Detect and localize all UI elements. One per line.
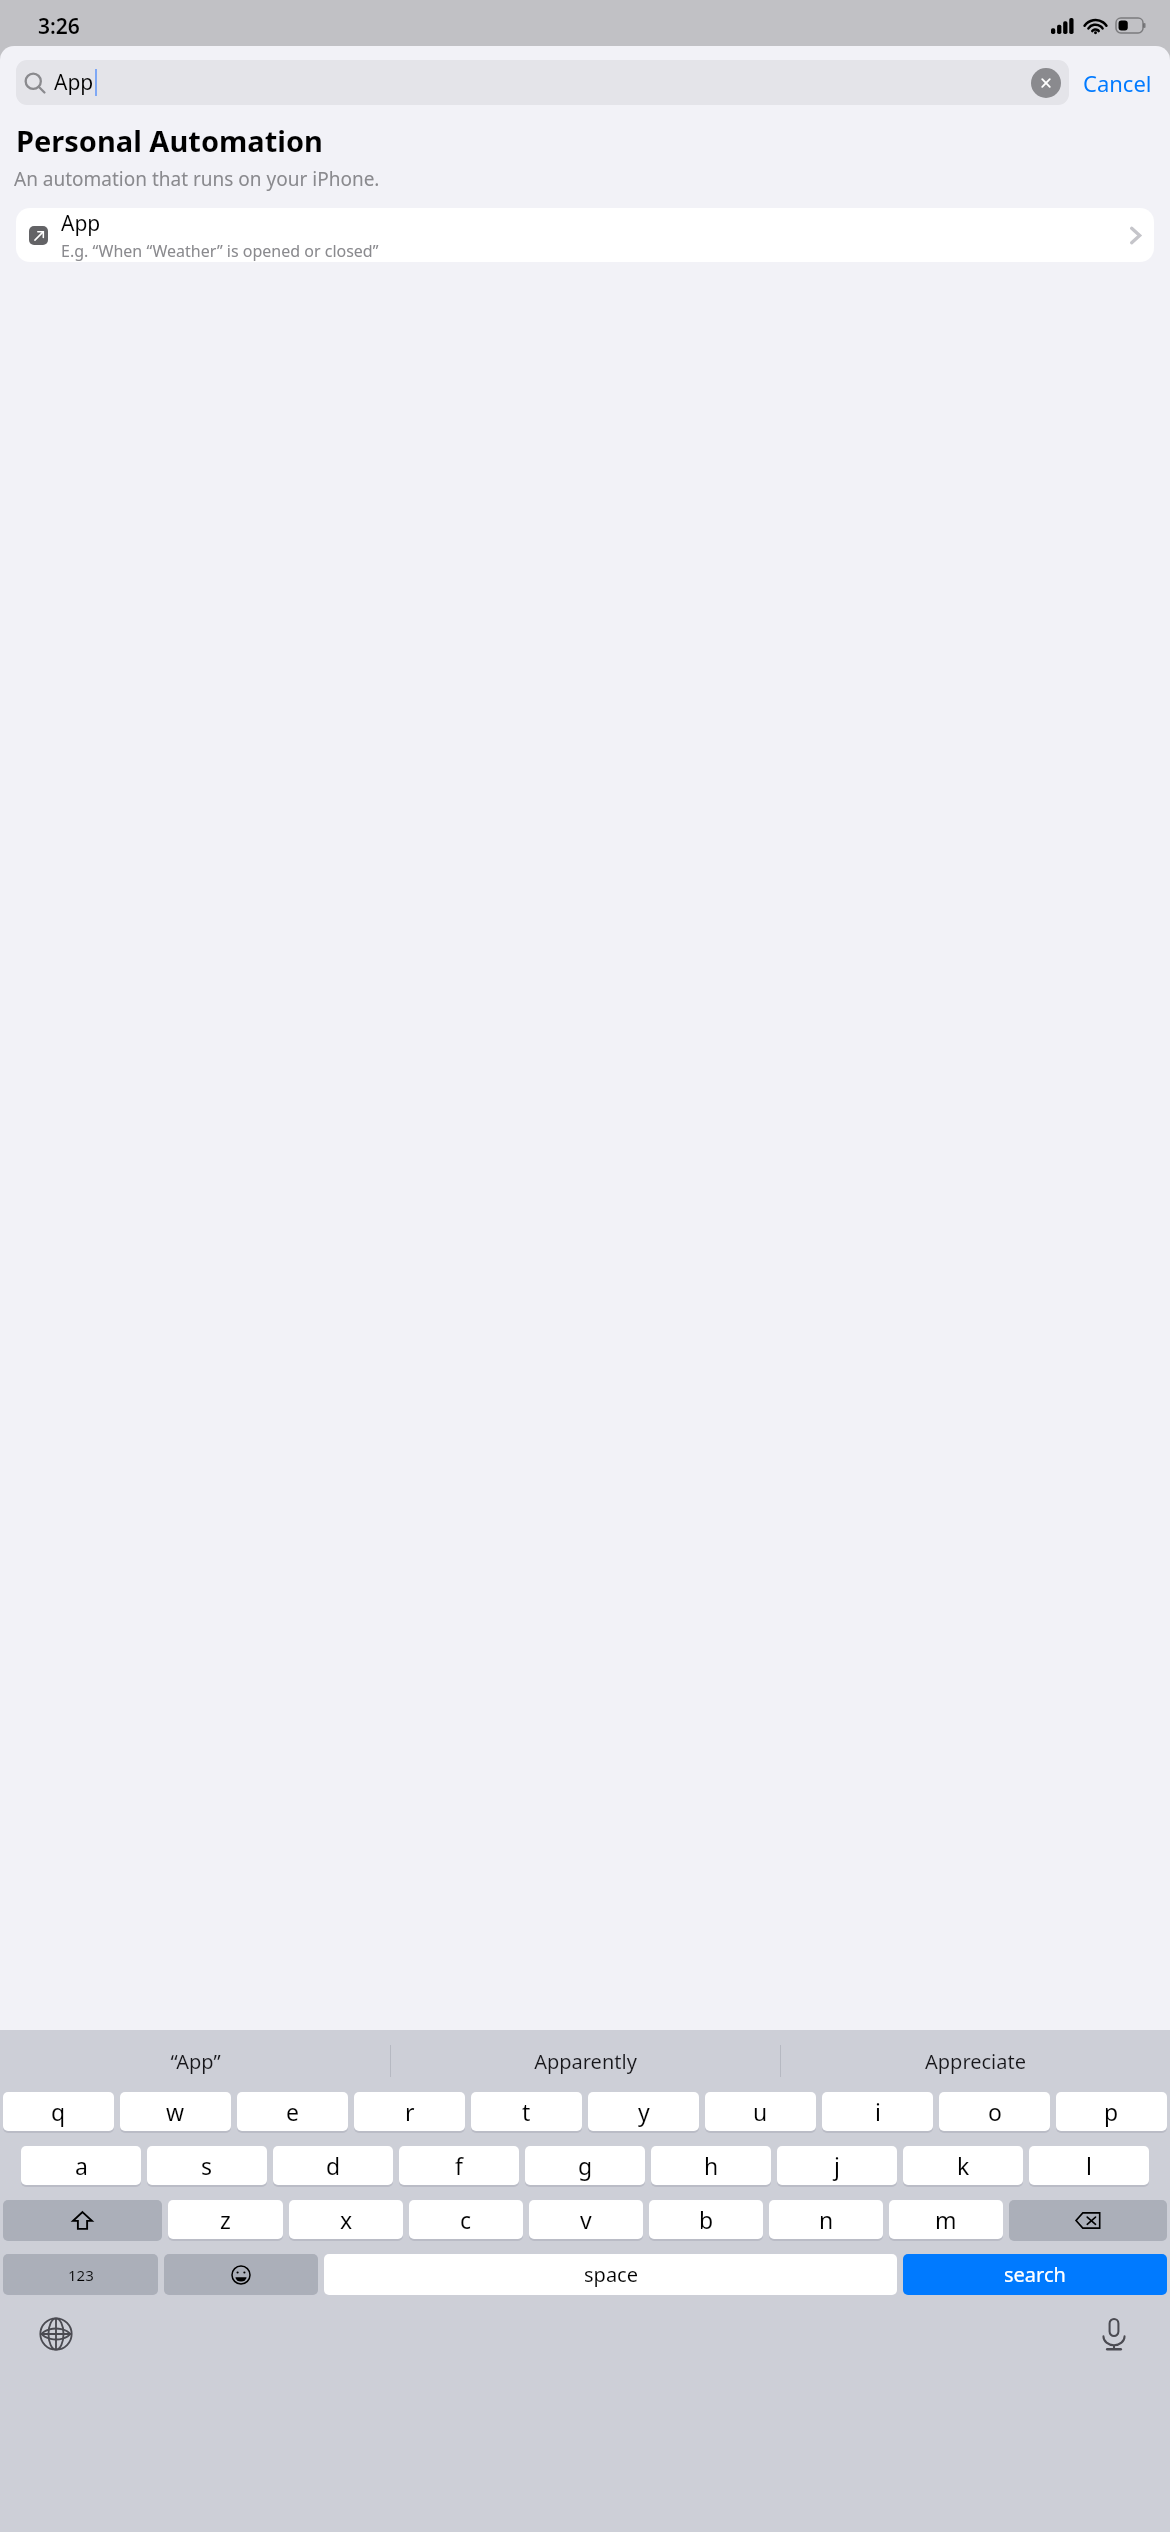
button[interactable]: a (21, 2146, 141, 2185)
button[interactable]: Shift (3, 2200, 162, 2241)
button[interactable]: e (237, 2092, 348, 2131)
button[interactable]: “App” (0, 2030, 390, 2092)
button[interactable]: App (16, 60, 1069, 105)
staticText: d (326, 2150, 341, 2181)
staticText: s (201, 2150, 213, 2181)
staticText: n (819, 2204, 834, 2235)
button[interactable]: 123 (3, 2254, 158, 2295)
staticText: c (460, 2204, 472, 2235)
button[interactable]: p (1056, 2092, 1167, 2131)
staticText: An automation that runs on your iPhone. (14, 166, 380, 192)
staticText: search (1004, 2261, 1066, 2288)
button[interactable]: j (777, 2146, 897, 2185)
staticText: 3:26 (38, 12, 80, 41)
button[interactable]: i (822, 2092, 933, 2131)
button[interactable]: Clear text (1031, 68, 1061, 98)
button[interactable]: w (120, 2092, 231, 2131)
staticText: e (286, 2096, 299, 2127)
button[interactable]: k (903, 2146, 1023, 2185)
staticText: h (704, 2150, 719, 2181)
button[interactable]: Dictate (1088, 2308, 1140, 2360)
staticText: k (957, 2150, 970, 2181)
staticText: p (1104, 2096, 1119, 2127)
staticText: E.g. “When “Weather” is opened or closed… (61, 240, 379, 262)
button[interactable]: r (354, 2092, 465, 2131)
staticText: t (522, 2096, 531, 2127)
staticText: g (578, 2150, 593, 2181)
button[interactable]: Backspace (1009, 2200, 1167, 2241)
button[interactable]: n (769, 2200, 883, 2239)
button[interactable]: l (1029, 2146, 1149, 2185)
staticText: f (455, 2150, 463, 2181)
button[interactable]: z (168, 2200, 283, 2239)
button[interactable]: c (409, 2200, 523, 2239)
staticText: w (166, 2096, 185, 2127)
staticText: z (220, 2204, 231, 2235)
staticText: y (638, 2096, 650, 2127)
staticText: Apparently (534, 2048, 637, 2075)
button[interactable]: m (889, 2200, 1003, 2239)
staticText: j (834, 2150, 840, 2181)
staticText: m (935, 2204, 957, 2235)
button[interactable]: s (147, 2146, 267, 2185)
button[interactable]: Cancel (1069, 62, 1154, 104)
staticText: b (699, 2204, 714, 2235)
button[interactable]: v (529, 2200, 643, 2239)
button[interactable]: Appreciate (780, 2030, 1170, 2092)
button[interactable]: g (525, 2146, 645, 2185)
staticText: Appreciate (925, 2048, 1026, 2075)
button[interactable]: t (471, 2092, 582, 2131)
staticText: u (753, 2096, 768, 2127)
staticText: App (54, 68, 94, 97)
staticText: r (405, 2096, 415, 2127)
staticText: i (875, 2096, 881, 2127)
staticText: x (340, 2204, 353, 2235)
button[interactable]: space (324, 2254, 897, 2295)
staticText: Cancel (1083, 68, 1152, 98)
button[interactable]: App (16, 208, 1154, 262)
staticText: App (61, 209, 101, 238)
button[interactable]: h (651, 2146, 771, 2185)
button[interactable]: Emoji (164, 2254, 318, 2295)
staticText: o (988, 2096, 1002, 2127)
button[interactable]: d (273, 2146, 393, 2185)
staticText: space (584, 2261, 638, 2288)
staticText: Personal Automation (16, 121, 323, 160)
staticText: q (51, 2096, 66, 2127)
staticText: v (580, 2204, 592, 2235)
staticText: “App” (170, 2048, 221, 2075)
staticText: l (1086, 2150, 1092, 2181)
button[interactable]: o (939, 2092, 1050, 2131)
staticText: a (75, 2150, 88, 2181)
button[interactable]: Change keyboard (30, 2308, 82, 2360)
button[interactable]: u (705, 2092, 816, 2131)
button[interactable]: q (3, 2092, 114, 2131)
button[interactable]: Apparently (390, 2030, 780, 2092)
button[interactable]: f (399, 2146, 519, 2185)
button[interactable]: y (588, 2092, 699, 2131)
staticText: 123 (68, 2265, 94, 2285)
button[interactable]: search (903, 2254, 1167, 2295)
button[interactable]: b (649, 2200, 763, 2239)
button[interactable]: x (289, 2200, 403, 2239)
